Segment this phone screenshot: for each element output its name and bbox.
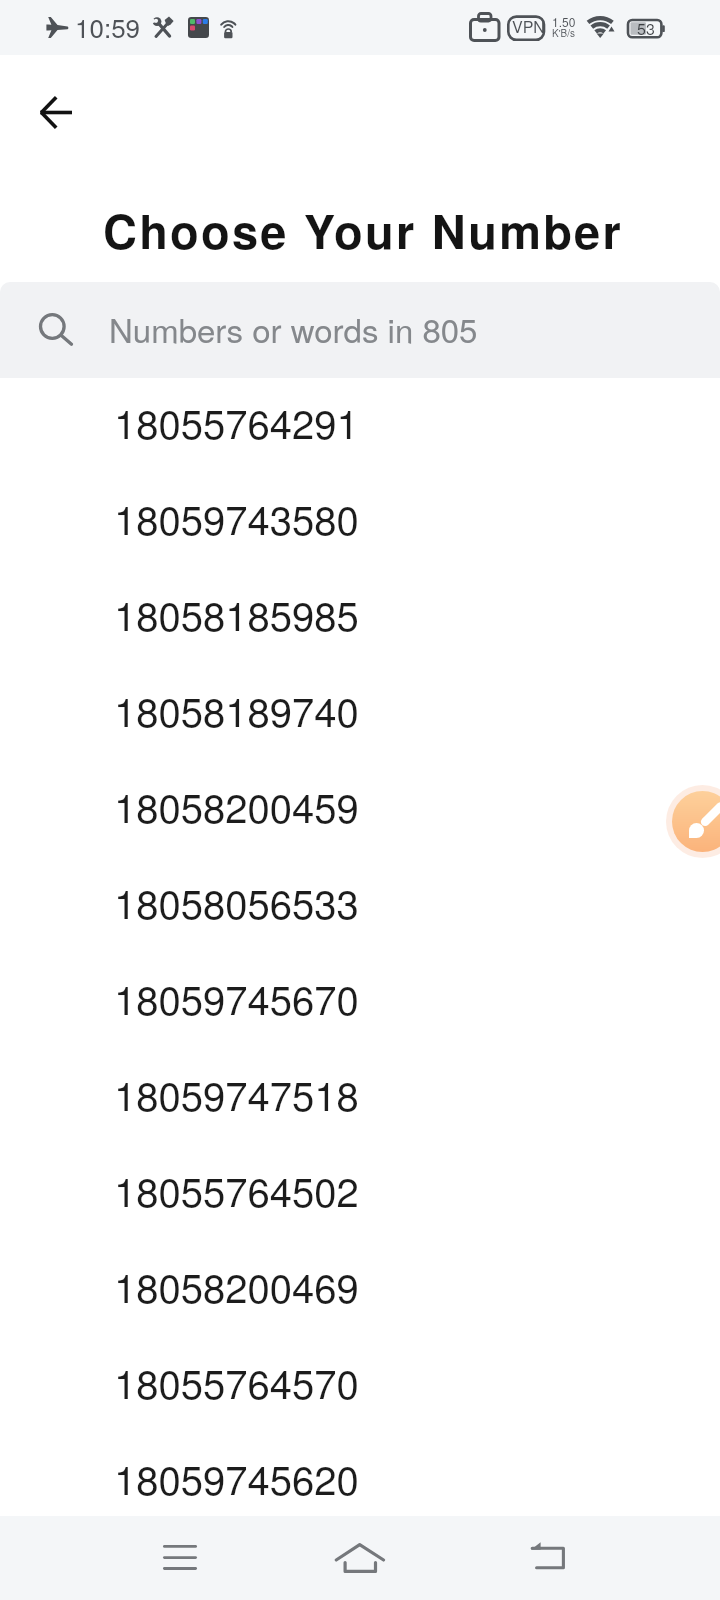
button[interactable]: Home (300, 1516, 420, 1600)
button[interactable]: 18058200469 (0, 1242, 720, 1338)
button[interactable]: 18058200459 (0, 762, 720, 858)
button[interactable]: Back (20, 74, 92, 146)
button[interactable]: 18055764291 (0, 378, 720, 474)
button[interactable]: Recent apps (120, 1516, 240, 1600)
staticText: 18059745670 (114, 969, 359, 1026)
staticText: 18059743580 (114, 489, 359, 546)
staticText: 18059747518 (114, 1065, 359, 1122)
staticText: 10:59 (75, 8, 141, 45)
staticText: 18058200469 (114, 1257, 359, 1314)
button[interactable]: 18058056533 (0, 858, 720, 954)
staticText: 18059745620 (114, 1449, 359, 1506)
button[interactable]: 18059745620 (0, 1434, 720, 1530)
button[interactable]: 18058189740 (0, 666, 720, 762)
button[interactable]: Back (489, 1513, 609, 1597)
staticText: 1.50 (552, 13, 576, 30)
staticText: 18058200459 (114, 777, 359, 834)
staticText: Choose Your Number (103, 196, 623, 263)
staticText: 18058056533 (114, 873, 359, 930)
button[interactable]: 18059743580 (0, 474, 720, 570)
button[interactable]: 18055764570 (0, 1338, 720, 1434)
staticText: 18058189740 (114, 681, 359, 738)
button[interactable]: Customize theme (672, 791, 720, 852)
staticText: 18058185985 (114, 585, 359, 642)
staticText: 18055764502 (114, 1161, 359, 1218)
staticText: Numbers or words in 805 (109, 305, 478, 352)
button[interactable]: Numbers or words in 805 (0, 282, 720, 378)
button[interactable]: 18059747518 (0, 1050, 720, 1146)
staticText: 18055764570 (114, 1353, 359, 1410)
button[interactable]: 18058185985 (0, 570, 720, 666)
staticText: 18055764291 (114, 393, 359, 450)
button[interactable]: 18059745670 (0, 954, 720, 1050)
staticText: VPN (512, 15, 545, 38)
button[interactable]: 18055764502 (0, 1146, 720, 1242)
staticText: K'B/s (552, 26, 576, 40)
staticText: 53 (637, 17, 655, 40)
